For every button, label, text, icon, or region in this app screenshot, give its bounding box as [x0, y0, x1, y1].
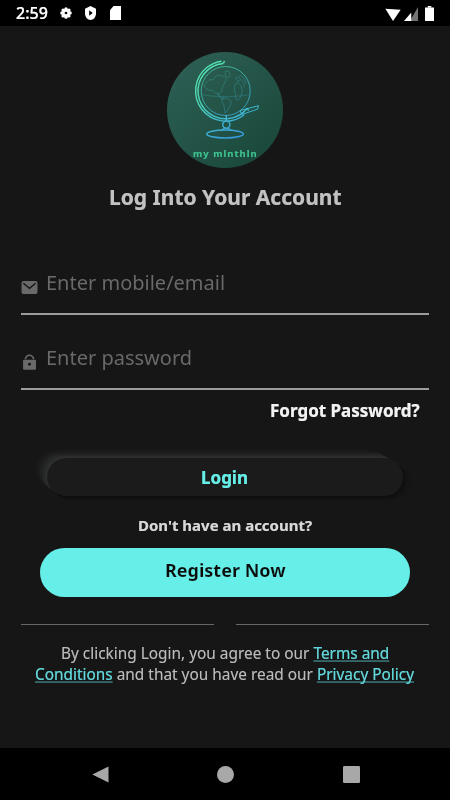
button[interactable]: Forgot Password? — [270, 397, 450, 424]
staticText: By clicking Login, you agree to our Term… — [61, 643, 390, 664]
staticText: Enter password — [46, 344, 193, 371]
staticText: Don't have an account? — [138, 515, 313, 535]
staticText: 2:59 — [16, 2, 48, 24]
staticText: Forgot Password? — [270, 399, 420, 422]
button[interactable]: Back — [74, 748, 126, 800]
staticText: Register Now — [165, 558, 286, 583]
staticText: Login — [201, 466, 249, 489]
button[interactable]: By clicking Login, you agree to our Term… — [0, 643, 450, 685]
staticText: Conditions and that you have read our Pr… — [35, 664, 415, 685]
button[interactable]: Enter mobile/email — [21, 269, 429, 315]
button[interactable]: Recents — [325, 748, 377, 800]
staticText: my mlnthln — [193, 147, 258, 160]
button[interactable]: Home — [199, 748, 251, 800]
button[interactable]: Login — [47, 458, 403, 496]
staticText: Log Into Your Account — [109, 183, 342, 212]
button[interactable]: Register Now — [40, 548, 410, 597]
button[interactable]: Enter password — [21, 344, 429, 390]
staticText: Enter mobile/email — [46, 269, 226, 296]
